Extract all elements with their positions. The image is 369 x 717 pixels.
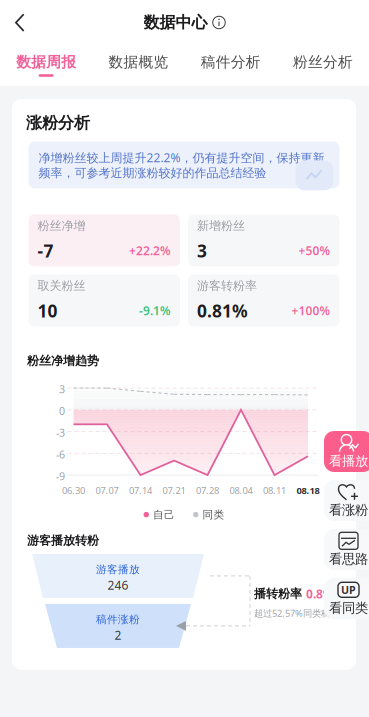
staticText: 同类 (202, 508, 224, 521)
button[interactable]: Back (0, 0, 40, 44)
staticText: 0 (59, 404, 65, 418)
staticText: 246 (107, 577, 128, 593)
staticText: 07.21 (162, 484, 185, 496)
staticText: 游客播放转粉 (27, 533, 99, 548)
button[interactable]: 稿件分析 (184, 50, 277, 80)
button[interactable]: 看涨粉 (324, 480, 369, 521)
staticText: 游客转粉率 (197, 278, 257, 293)
staticText: +22.2% (129, 243, 171, 259)
staticText: 粉丝净增 (37, 218, 85, 233)
staticText: 07.07 (95, 484, 118, 496)
staticText: 取关粉丝 (37, 278, 85, 293)
staticText: -9.1% (139, 303, 171, 319)
staticText: 稿件涨粉 (96, 613, 140, 626)
staticText: 自己 (153, 508, 175, 521)
button[interactable]: UP (324, 578, 369, 619)
staticText: 稿件分析 (201, 53, 261, 71)
staticText: 3 (197, 239, 207, 262)
button[interactable]: 看播放 (324, 431, 369, 472)
button[interactable]: 数据概览 (92, 50, 184, 80)
staticText: +100% (291, 303, 330, 319)
staticText: 数据中心 (143, 13, 207, 32)
staticText: 08.11 (263, 484, 286, 496)
staticText: 播转粉率 (254, 586, 302, 601)
staticText: 游客播放 (96, 563, 140, 576)
button[interactable]: 看思路 (324, 529, 369, 570)
staticText: UP (341, 583, 356, 597)
staticText: 07.28 (196, 484, 219, 496)
staticText: 看涨粉 (329, 502, 368, 518)
staticText: 涨粉分析 (26, 113, 90, 133)
staticText: 粉丝分析 (293, 53, 353, 71)
staticText: 10 (37, 299, 57, 322)
staticText: +50% (298, 243, 330, 259)
staticText: -3 (56, 426, 65, 440)
staticText: 2 (114, 627, 121, 643)
staticText: 3 (59, 382, 65, 396)
staticText: 数据概览 (108, 53, 168, 71)
staticText: 看同类 (329, 600, 368, 616)
button[interactable]: 数据周报 (0, 50, 92, 80)
staticText: 看思路 (329, 551, 368, 567)
staticText: -7 (37, 239, 53, 262)
staticText: 新增粉丝 (197, 218, 245, 233)
staticText: 07.14 (129, 484, 152, 496)
staticText: 08.18 (296, 484, 319, 496)
staticText: 看播放 (329, 453, 368, 469)
staticText: 0.8% (306, 586, 334, 602)
staticText: 超过52.57%同类稿件 (254, 607, 339, 619)
staticText: -9 (56, 469, 65, 483)
staticText: 06.30 (62, 484, 85, 496)
staticText: 净增粉丝较上周提升22.2%，仍有提升空间，保持更新频率，可参考近期涨粉较好的作… (38, 150, 324, 180)
staticText: 0.81% (197, 299, 248, 322)
staticText: -6 (56, 447, 65, 461)
button[interactable]: 粉丝分析 (277, 50, 369, 80)
staticText: 粉丝净增趋势 (27, 353, 99, 368)
staticText: 08.04 (229, 484, 252, 496)
staticText: 数据周报 (16, 53, 76, 71)
